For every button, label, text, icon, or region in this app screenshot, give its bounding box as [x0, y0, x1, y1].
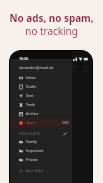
button[interactable]: Trash — [10, 100, 72, 109]
staticText: Archive — [26, 111, 39, 116]
staticText: No ads, no spam, — [9, 11, 94, 24]
staticText: Spam — [26, 120, 36, 125]
button[interactable]: alexander@email.de — [10, 63, 72, 71]
button[interactable]: Spam — [10, 118, 72, 127]
staticText: alexander@email.de — [19, 65, 54, 70]
staticText: Inbox — [26, 75, 36, 80]
staticText: Drafts — [26, 84, 37, 89]
staticText: Family — [26, 139, 37, 144]
button[interactable]: Private — [10, 155, 72, 164]
button[interactable]: Compose — [82, 66, 88, 72]
staticText: no tracking — [25, 24, 78, 37]
button[interactable]: Search — [70, 66, 76, 72]
button[interactable]: Add folder — [10, 166, 72, 175]
staticText: 16:46 — [19, 56, 29, 61]
staticText: Sent — [26, 93, 34, 98]
staticText: Private — [26, 157, 38, 162]
staticText: YOUR FOLDERS — [19, 132, 41, 136]
staticText: Trash — [26, 102, 36, 107]
button[interactable]: Archive — [10, 109, 72, 118]
staticText: Important — [26, 148, 44, 153]
button[interactable]: Important — [10, 146, 72, 155]
staticText: Add folder — [26, 168, 44, 173]
button[interactable]: Family — [10, 137, 72, 146]
button[interactable]: Sent — [10, 91, 72, 100]
button[interactable]: Drafts — [10, 82, 72, 91]
button[interactable]: Edit folders — [62, 131, 68, 137]
button[interactable]: Inbox — [10, 73, 72, 82]
